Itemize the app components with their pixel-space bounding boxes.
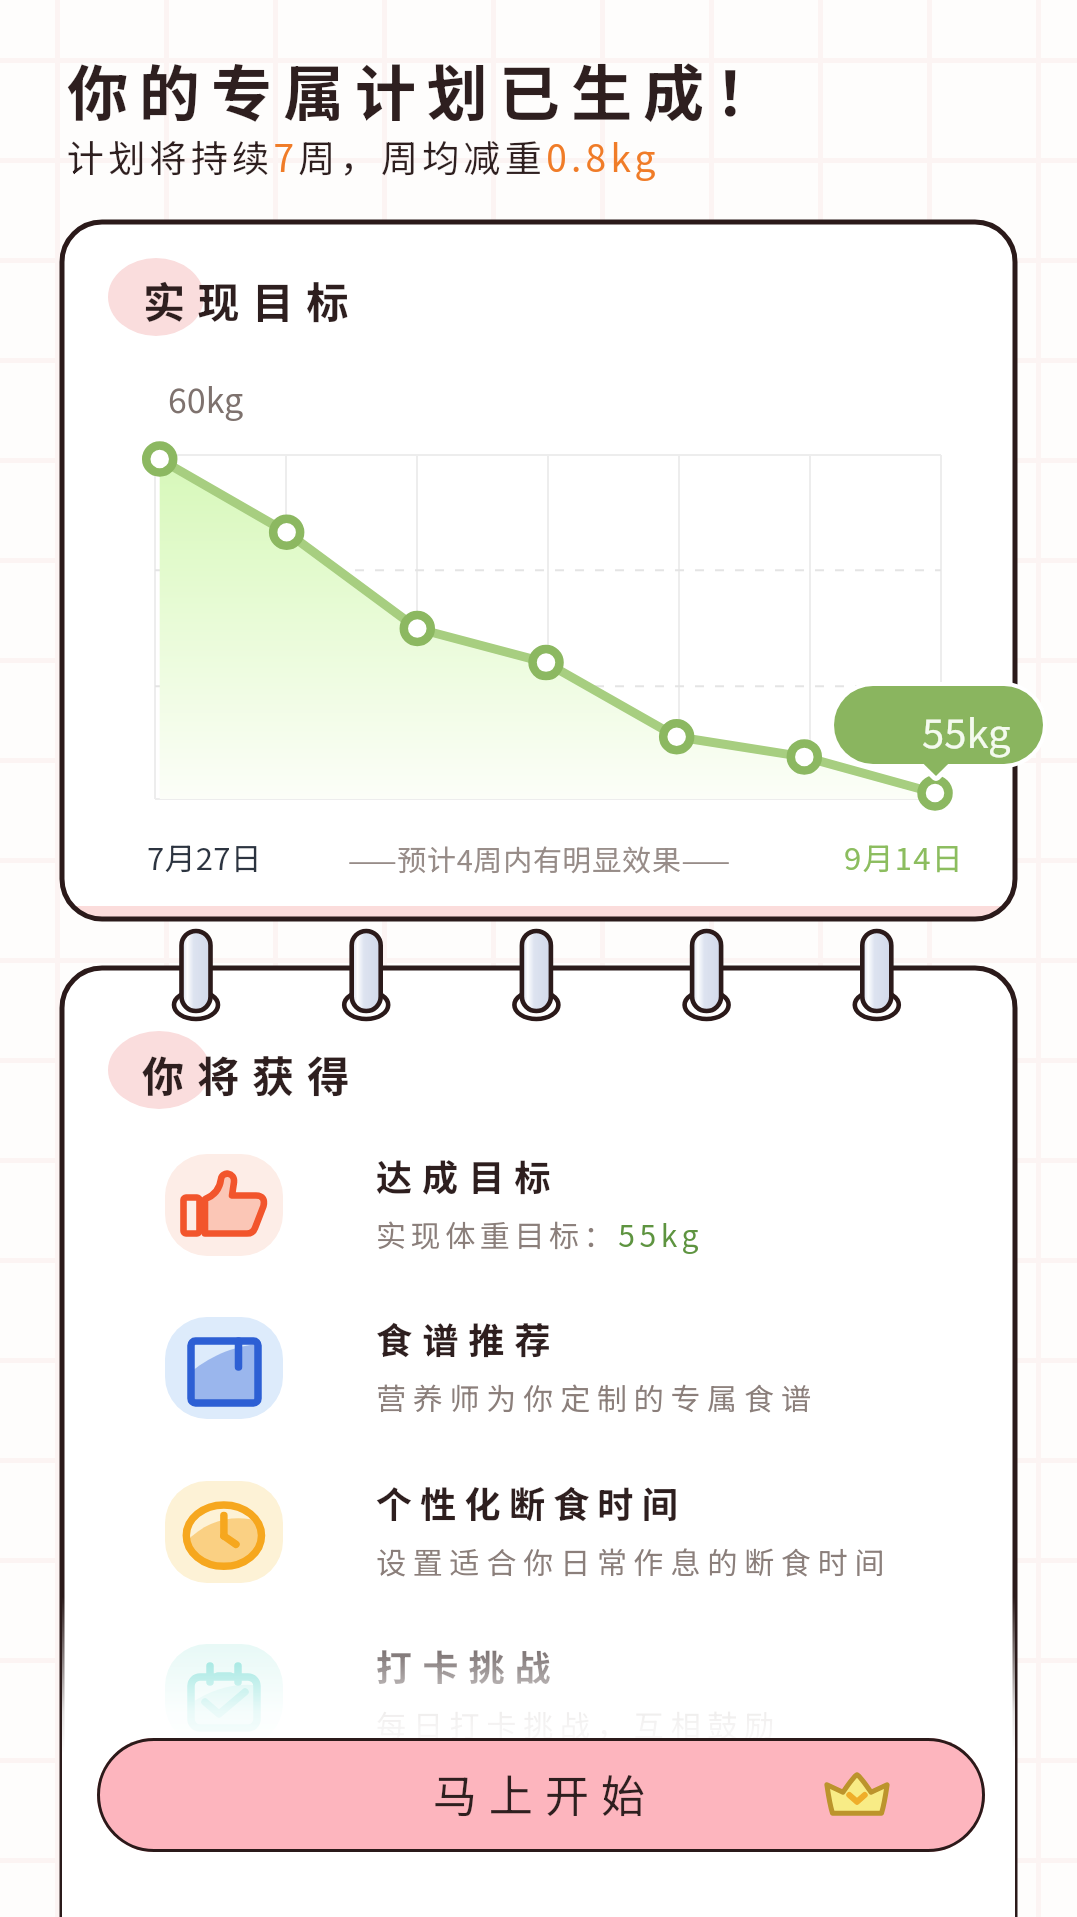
staticText: 打卡挑战 <box>376 1639 561 1691</box>
button[interactable]: 个性化断食时间 <box>165 1481 283 1583</box>
staticText: 60kg <box>168 374 244 423</box>
button[interactable]: 食谱推荐 <box>165 1317 283 1419</box>
staticText: ——预计4周内有明显效果—— <box>348 837 731 879</box>
other: VIP <box>822 1771 892 1817</box>
button[interactable]: 打卡挑战 <box>165 1644 283 1746</box>
staticText: 你的专属计划已生成！ <box>67 45 788 133</box>
button[interactable]: 马上开始 <box>97 1738 985 1852</box>
staticText: 实现目标 <box>143 269 362 330</box>
button[interactable]: 达成目标 <box>165 1154 283 1256</box>
staticText: 你将获得 <box>142 1043 363 1104</box>
staticText: 实现体重目标：55kg <box>376 1212 703 1255</box>
staticText: 达成目标 <box>376 1149 561 1201</box>
staticText: 9月14日 <box>844 834 965 879</box>
staticText: 营养师为你定制的专属食谱 <box>376 1375 818 1418</box>
staticText: 马上开始 <box>433 1761 657 1825</box>
staticText: 7月27日 <box>147 834 263 879</box>
staticText: 设置适合你日常作息的断食时间 <box>376 1539 892 1582</box>
staticText: 每日打卡挑战，互相鼓励 <box>376 1702 781 1745</box>
staticText: 计划将持续7周，周均减重0.8kg <box>67 129 660 183</box>
staticText: 食谱推荐 <box>376 1312 561 1364</box>
staticText: 个性化断食时间 <box>376 1476 687 1528</box>
staticText: 55kg <box>922 702 1011 760</box>
